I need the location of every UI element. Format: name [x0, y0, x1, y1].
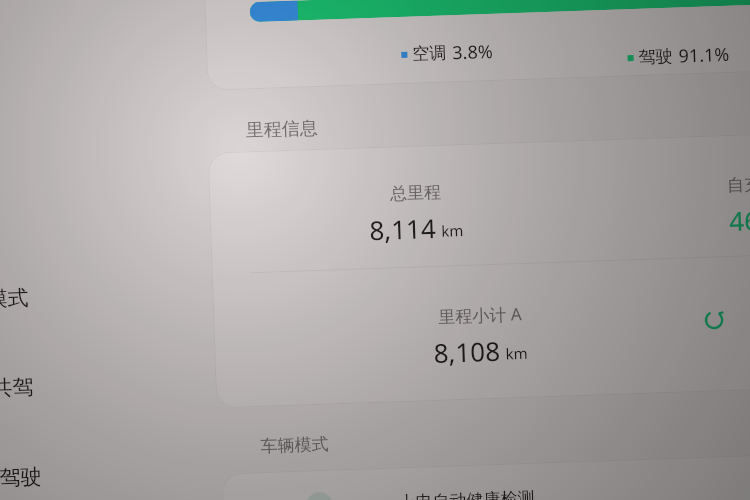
staticText: 3.8% [452, 39, 494, 65]
staticText: 总里程 [390, 182, 441, 204]
staticText: 空调 [412, 42, 447, 65]
button[interactable]: 上电自动健康检测 [221, 453, 750, 500]
staticText: 8,114 [369, 210, 437, 247]
button[interactable]: 总里程 [264, 140, 567, 272]
staticText: 自动共驾 [0, 374, 34, 402]
staticText: 8,108 [433, 333, 501, 370]
button[interactable]: 里程小计 A [328, 260, 632, 403]
staticText: 车辆模式 [260, 434, 329, 457]
button[interactable]: 自充电量 [609, 132, 750, 260]
button[interactable]: Reset trip meter [695, 301, 732, 338]
staticText: 智能驾驶 [0, 463, 42, 492]
staticText: 91.1% [678, 42, 730, 68]
button[interactable]: 空调 [202, 0, 750, 91]
staticText: 里程小计 A [438, 302, 523, 328]
staticText: km [441, 220, 465, 241]
staticText: 46 [729, 202, 750, 238]
staticText: 上电自动健康检测 [398, 488, 535, 500]
staticText: 驾驶 [638, 46, 673, 68]
staticText: 里程信息 [245, 117, 318, 142]
button[interactable]: 驾驶 [627, 42, 730, 70]
staticText: 自充电量 [727, 173, 750, 196]
staticText: km [505, 343, 529, 364]
staticText: 驾驶模式 [0, 285, 29, 314]
button[interactable]: 空调 [401, 39, 494, 67]
